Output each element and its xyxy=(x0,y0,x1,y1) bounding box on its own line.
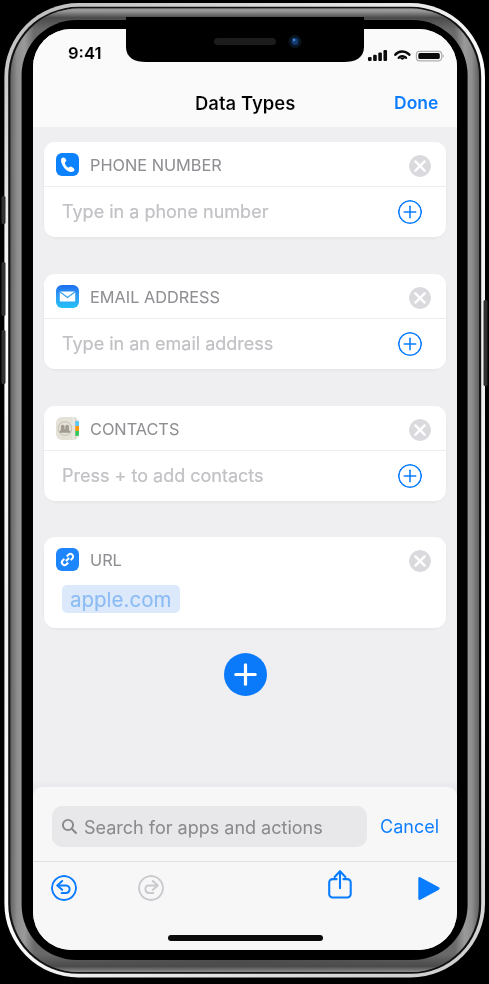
button[interactable]: Add xyxy=(398,332,422,356)
staticText: Press + to add contacts xyxy=(62,465,264,487)
button[interactable]: Type in an email address xyxy=(44,319,446,369)
button[interactable]: Clear xyxy=(409,287,431,309)
button[interactable]: Share xyxy=(324,868,356,900)
button[interactable]: Add xyxy=(398,464,422,488)
staticText: Search for apps and actions xyxy=(84,817,323,839)
button[interactable]: Add data type xyxy=(224,653,267,696)
button[interactable]: Undo xyxy=(51,875,77,901)
staticText: Type in a phone number xyxy=(62,201,269,223)
button[interactable]: PHONE NUMBER xyxy=(44,142,446,186)
button[interactable]: Press + to add contacts xyxy=(44,451,446,501)
button[interactable]: CONTACTS xyxy=(44,406,446,450)
staticText: Data Types xyxy=(195,92,296,114)
button[interactable]: Clear xyxy=(409,155,431,177)
button[interactable]: apple.com xyxy=(62,585,180,613)
staticText: EMAIL ADDRESS xyxy=(90,287,220,307)
button[interactable]: Run xyxy=(416,875,442,901)
staticText: CONTACTS xyxy=(90,419,180,439)
button[interactable]: EMAIL ADDRESS xyxy=(44,274,446,318)
staticText: 9:41 xyxy=(68,43,102,63)
button[interactable]: Cancel xyxy=(380,806,440,847)
button[interactable]: Clear xyxy=(409,419,431,441)
staticText: Cancel xyxy=(380,816,440,838)
button[interactable]: Type in a phone number xyxy=(44,187,446,237)
staticText: URL xyxy=(90,550,122,570)
staticText: PHONE NUMBER xyxy=(90,155,222,175)
staticText: apple.com xyxy=(70,587,172,612)
button[interactable]: Redo xyxy=(138,875,164,901)
staticText: Type in an email address xyxy=(62,333,274,355)
button[interactable]: Done xyxy=(376,81,457,122)
staticText: Done xyxy=(394,92,439,113)
button[interactable]: Add xyxy=(398,200,422,224)
button[interactable]: Clear xyxy=(409,550,431,572)
button[interactable]: URL xyxy=(44,537,446,581)
button[interactable]: Search for apps and actions xyxy=(52,806,367,847)
